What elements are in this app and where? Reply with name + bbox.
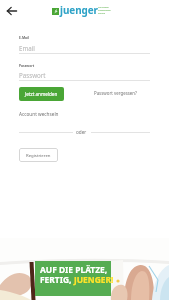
- button[interactable]: Registrieren: [19, 148, 58, 162]
- staticText: Passwort: [19, 63, 35, 67]
- button[interactable]: Back: [3, 2, 21, 20]
- button[interactable]: Jetzt anmelden: [19, 87, 64, 101]
- staticText: Registrieren: [26, 152, 51, 158]
- staticText: Jetzt anmelden: [25, 91, 58, 97]
- staticText: Consulting: [98, 6, 109, 9]
- button[interactable]: Passwort vergessen?: [94, 90, 137, 96]
- staticText: E-Mail: [19, 35, 29, 39]
- staticText: Passwort: [19, 71, 46, 79]
- staticText: juenger: [60, 3, 98, 16]
- staticText: Email: [19, 44, 35, 52]
- staticText: Service: [98, 12, 105, 15]
- staticText: Account wechseln: [19, 111, 59, 117]
- staticText: Organisation: [98, 9, 111, 12]
- staticText: AUF DIE PLÄTZE,: [40, 264, 108, 275]
- staticText: JUENGER!: [74, 274, 114, 285]
- button[interactable]: Account wechseln: [19, 111, 59, 117]
- staticText: oder: [76, 129, 87, 135]
- staticText: FERTIG,: [40, 274, 74, 285]
- staticText: Passwort vergessen?: [94, 90, 137, 96]
